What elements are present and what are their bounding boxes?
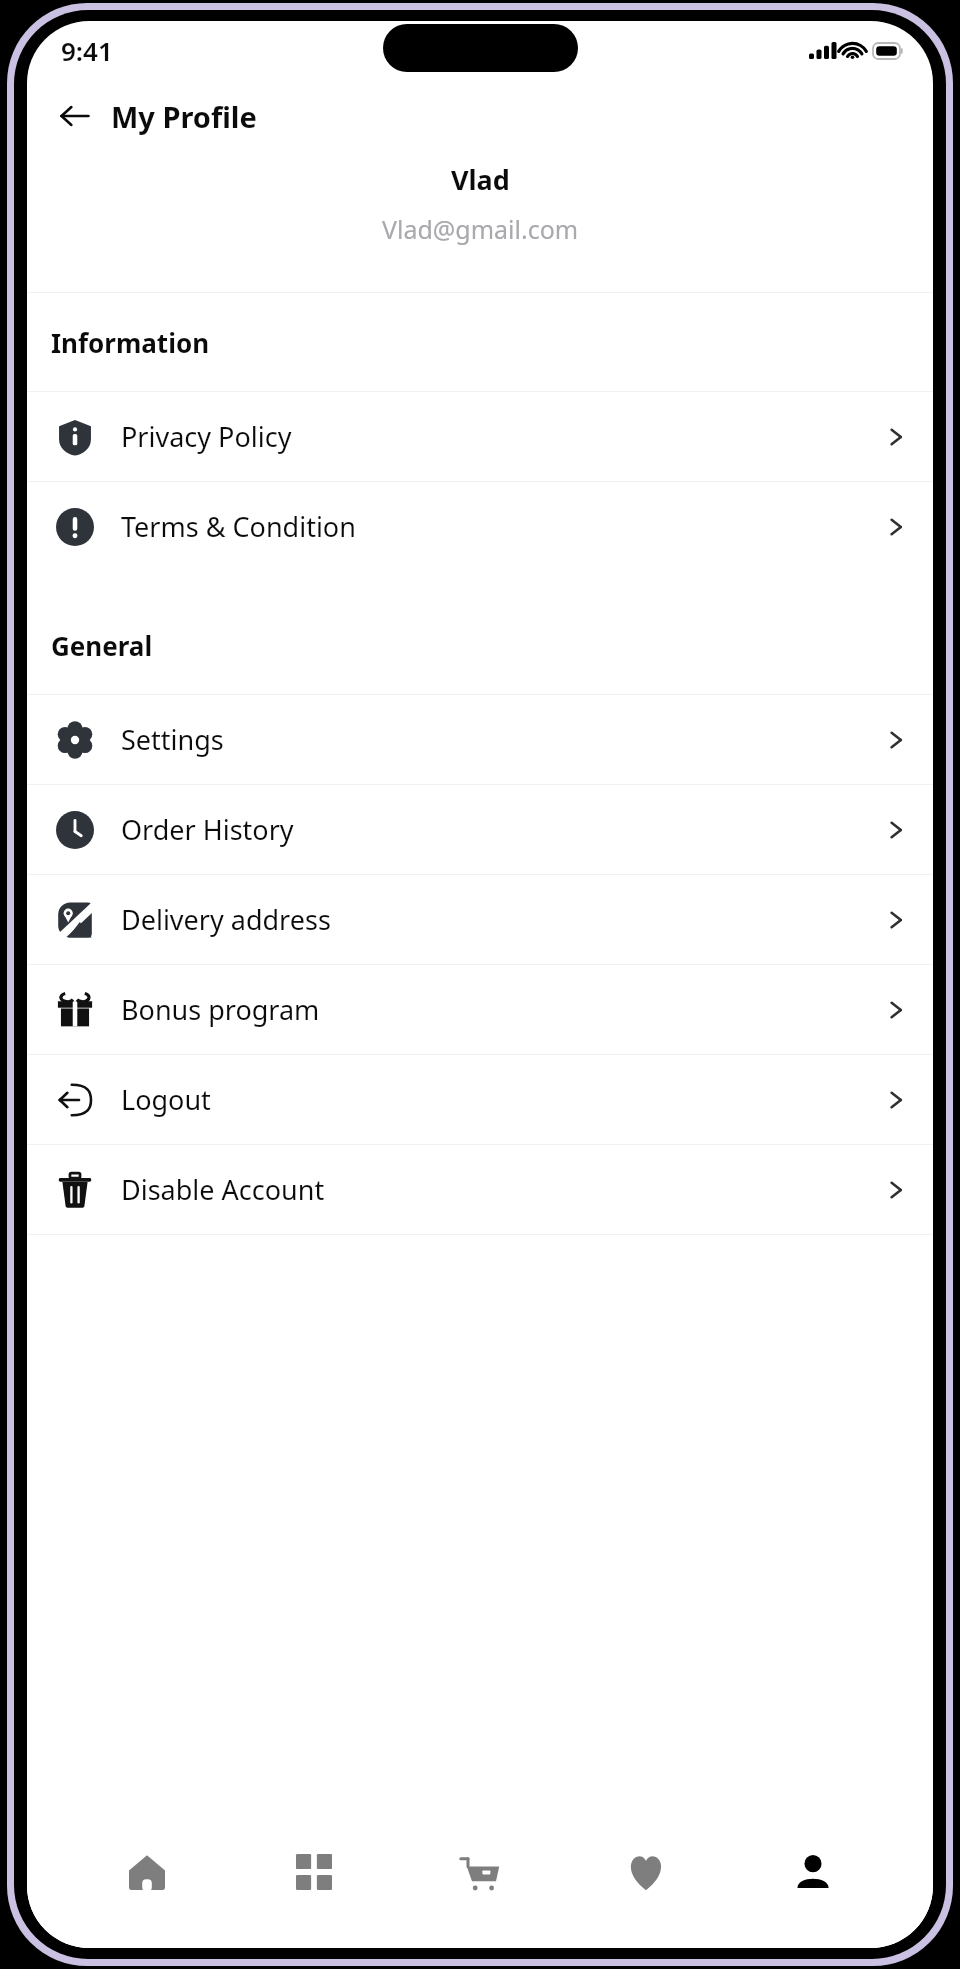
staticText: 9:41	[61, 33, 113, 68]
button[interactable]: Terms & Condition	[27, 482, 933, 571]
button[interactable]: Favorites	[600, 1826, 692, 1918]
staticText: Vlad	[451, 161, 510, 198]
button[interactable]: Bonus program	[27, 965, 933, 1054]
staticText: Privacy Policy	[121, 418, 292, 455]
staticText: Terms & Condition	[121, 508, 356, 545]
staticText: Bonus program	[121, 991, 320, 1028]
staticText: Information	[51, 325, 210, 360]
staticText: General	[51, 628, 153, 663]
staticText: Settings	[121, 721, 224, 758]
button[interactable]: Back	[49, 90, 101, 142]
staticText: Logout	[121, 1081, 211, 1118]
button[interactable]: Profile	[767, 1826, 859, 1918]
button[interactable]: Disable Account	[27, 1145, 933, 1234]
staticText: My Profile	[111, 97, 257, 136]
staticText: Delivery address	[121, 901, 331, 938]
staticText: Disable Account	[121, 1171, 325, 1208]
button[interactable]: Settings	[27, 695, 933, 784]
button[interactable]: Categories	[268, 1826, 360, 1918]
button[interactable]: Home	[101, 1826, 193, 1918]
button[interactable]: Cart	[434, 1826, 526, 1918]
button[interactable]: Logout	[27, 1055, 933, 1144]
button[interactable]: Delivery address	[27, 875, 933, 964]
button[interactable]: Order History	[27, 785, 933, 874]
button[interactable]: Privacy Policy	[27, 392, 933, 481]
staticText: Order History	[121, 811, 294, 848]
staticText: Vlad@gmail.com	[382, 212, 579, 246]
